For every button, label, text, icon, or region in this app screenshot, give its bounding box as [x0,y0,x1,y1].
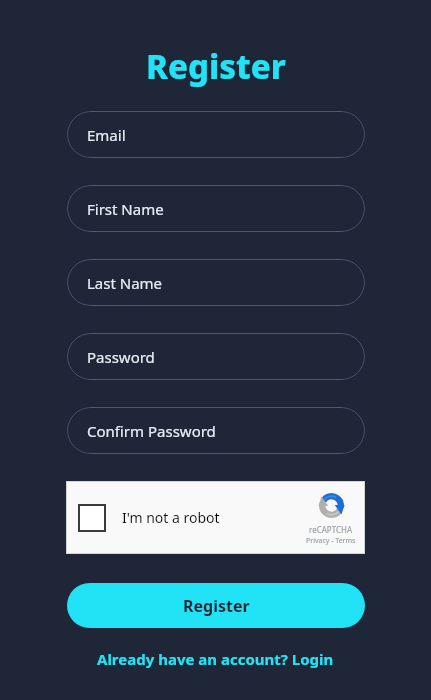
button[interactable]: I'm not a robot checkbox [66,481,365,554]
button[interactable]: Email [67,111,365,158]
button[interactable]: First Name [67,185,365,232]
button[interactable]: Last Name [67,259,365,306]
button[interactable]: Already have an account? Login [89,645,342,673]
button[interactable]: Confirm Password [67,407,365,454]
staticText: Privacy - Terms [306,536,356,546]
staticText: Register [146,44,286,89]
staticText: reCAPTCHA [309,524,353,535]
other: reCAPTCHA logo [316,490,347,521]
other: I'm not a robot checkbox [78,504,106,532]
button[interactable]: Register [67,583,365,628]
button[interactable]: Password [67,333,365,380]
staticText: Confirm Password [87,421,216,441]
staticText: First Name [87,199,164,219]
staticText: Email [87,125,126,145]
staticText: I'm not a robot [122,508,220,527]
staticText: Password [87,347,155,367]
staticText: Already have an account? Login [97,649,334,669]
staticText: Last Name [87,273,163,293]
staticText: Register [183,595,250,617]
